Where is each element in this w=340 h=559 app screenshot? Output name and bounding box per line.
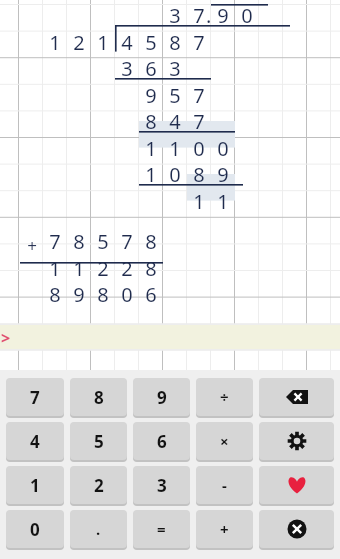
- button[interactable]: 1: [6, 466, 64, 504]
- staticText: 8: [145, 255, 157, 282]
- staticText: 1: [49, 255, 61, 282]
- staticText: 1: [30, 474, 40, 497]
- button[interactable]: 8: [70, 378, 127, 416]
- button[interactable]: 0: [6, 510, 64, 548]
- staticText: 3: [121, 55, 133, 82]
- staticText: -: [222, 475, 227, 495]
- staticText: 9: [145, 82, 157, 109]
- staticText: 8: [193, 161, 205, 188]
- button[interactable]: Favorite: [259, 466, 334, 504]
- staticText: 9: [217, 161, 229, 188]
- staticText: 7: [193, 2, 205, 29]
- button[interactable]: +: [196, 510, 253, 548]
- button[interactable]: ÷: [196, 378, 253, 416]
- button[interactable]: 3: [133, 466, 190, 504]
- staticText: 9: [217, 2, 229, 29]
- staticText: +: [220, 519, 229, 539]
- staticText: 0: [169, 161, 181, 188]
- button[interactable]: 7: [6, 378, 64, 416]
- staticText: 7: [193, 29, 205, 56]
- button[interactable]: ×: [196, 422, 253, 460]
- staticText: 0: [193, 135, 205, 162]
- staticText: 9: [157, 386, 167, 409]
- staticText: 1: [145, 135, 157, 162]
- staticText: .: [96, 519, 101, 539]
- staticText: 6: [145, 55, 157, 82]
- staticText: 9: [73, 281, 85, 308]
- staticText: 1: [97, 29, 109, 56]
- staticText: 5: [94, 430, 104, 453]
- staticText: 2: [94, 474, 104, 497]
- staticText: ×: [220, 431, 229, 451]
- button[interactable]: 2: [70, 466, 127, 504]
- staticText: =: [157, 519, 166, 539]
- staticText: 3: [157, 474, 167, 497]
- staticText: 7: [121, 228, 133, 255]
- staticText: 1: [145, 161, 157, 188]
- staticText: 7: [193, 82, 205, 109]
- staticText: 5: [97, 228, 109, 255]
- button[interactable]: 9: [133, 378, 190, 416]
- staticText: 1: [193, 188, 205, 215]
- button[interactable]: -: [196, 466, 253, 504]
- staticText: 0: [241, 2, 253, 29]
- staticText: 7: [193, 108, 205, 135]
- button[interactable]: Backspace: [259, 378, 334, 416]
- staticText: 2: [73, 29, 85, 56]
- staticText: 8: [97, 281, 109, 308]
- staticText: 8: [73, 228, 85, 255]
- staticText: 4: [121, 29, 133, 56]
- staticText: 1: [49, 29, 61, 56]
- staticText: 0: [30, 518, 40, 541]
- staticText: 8: [94, 386, 104, 409]
- button[interactable]: .: [70, 510, 127, 548]
- button[interactable]: 4: [6, 422, 64, 460]
- staticText: 0: [217, 135, 229, 162]
- staticText: 1: [217, 188, 229, 215]
- staticText: 2: [121, 255, 133, 282]
- staticText: 0: [121, 281, 133, 308]
- staticText: 6: [145, 281, 157, 308]
- staticText: 3: [169, 2, 181, 29]
- staticText: 3: [169, 55, 181, 82]
- button[interactable]: Clear: [259, 510, 334, 548]
- staticText: +: [27, 234, 37, 257]
- staticText: ÷: [220, 387, 229, 407]
- staticText: .: [206, 2, 212, 29]
- button[interactable]: Settings: [259, 422, 334, 460]
- staticText: 1: [73, 255, 85, 282]
- staticText: 2: [97, 255, 109, 282]
- staticText: 8: [145, 228, 157, 255]
- staticText: 1: [169, 135, 181, 162]
- staticText: 6: [157, 430, 167, 453]
- staticText: 5: [169, 82, 181, 109]
- button[interactable]: 5: [70, 422, 127, 460]
- button[interactable]: 6: [133, 422, 190, 460]
- staticText: 8: [145, 108, 157, 135]
- button[interactable]: =: [133, 510, 190, 548]
- staticText: >: [1, 327, 11, 349]
- staticText: 7: [49, 228, 61, 255]
- staticText: 4: [30, 430, 40, 453]
- staticText: 7: [30, 386, 40, 409]
- staticText: 4: [169, 108, 181, 135]
- staticText: 5: [145, 29, 157, 56]
- staticText: 8: [49, 281, 61, 308]
- staticText: 8: [169, 29, 181, 56]
